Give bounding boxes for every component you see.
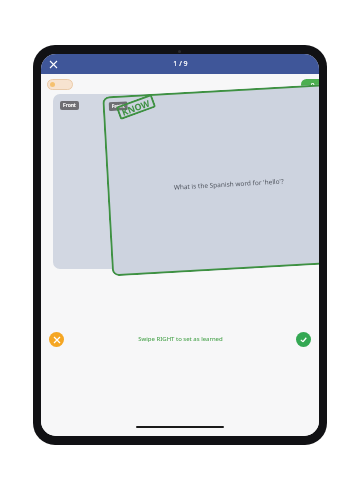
staticText: 0 [311, 81, 315, 89]
button[interactable]: Close [45, 56, 61, 72]
staticText: Front [63, 102, 76, 109]
button[interactable]: Learned count [301, 79, 319, 90]
staticText: Swipe RIGHT to set as learned [138, 335, 223, 343]
button[interactable]: Mark as not learned [49, 332, 64, 347]
staticText: Front [111, 102, 125, 110]
button[interactable]: Front [102, 84, 319, 276]
button[interactable]: Mark as learned [296, 332, 311, 347]
button[interactable]: Unlearned count [47, 79, 73, 90]
staticText: KNOW [120, 96, 152, 118]
staticText: What is the Spanish word for 'hello'? [173, 176, 284, 192]
staticText: 1 / 9 [173, 59, 188, 69]
